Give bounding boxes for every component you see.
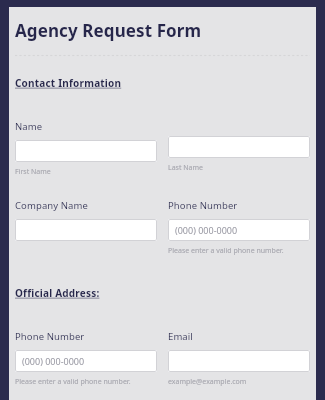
button[interactable]: Company Name bbox=[15, 219, 157, 241]
staticText: Name bbox=[15, 120, 43, 133]
staticText: Last Name bbox=[168, 163, 204, 173]
staticText: Email bbox=[168, 330, 193, 343]
staticText: Please enter a valid phone number. bbox=[15, 377, 131, 387]
button[interactable]: Phone Number bbox=[168, 219, 310, 241]
staticText: (000) 000-0000 bbox=[175, 224, 238, 236]
button[interactable]: Last Name bbox=[168, 136, 310, 158]
button[interactable]: Name bbox=[15, 140, 157, 162]
staticText: Contact Information bbox=[15, 76, 124, 90]
staticText: Official Address: bbox=[15, 286, 100, 300]
button[interactable]: Email bbox=[168, 350, 310, 372]
button[interactable]: Phone Number bbox=[15, 350, 157, 372]
staticText: Phone Number bbox=[168, 199, 238, 212]
staticText: Agency Request Form bbox=[15, 19, 202, 42]
staticText: (000) 000-0000 bbox=[22, 355, 85, 367]
staticText: example@example.com bbox=[168, 377, 247, 387]
staticText: Please enter a valid phone number. bbox=[168, 246, 284, 256]
staticText: First Name bbox=[15, 167, 51, 177]
staticText: Company Name bbox=[15, 199, 88, 212]
staticText: Phone Number bbox=[15, 330, 85, 343]
